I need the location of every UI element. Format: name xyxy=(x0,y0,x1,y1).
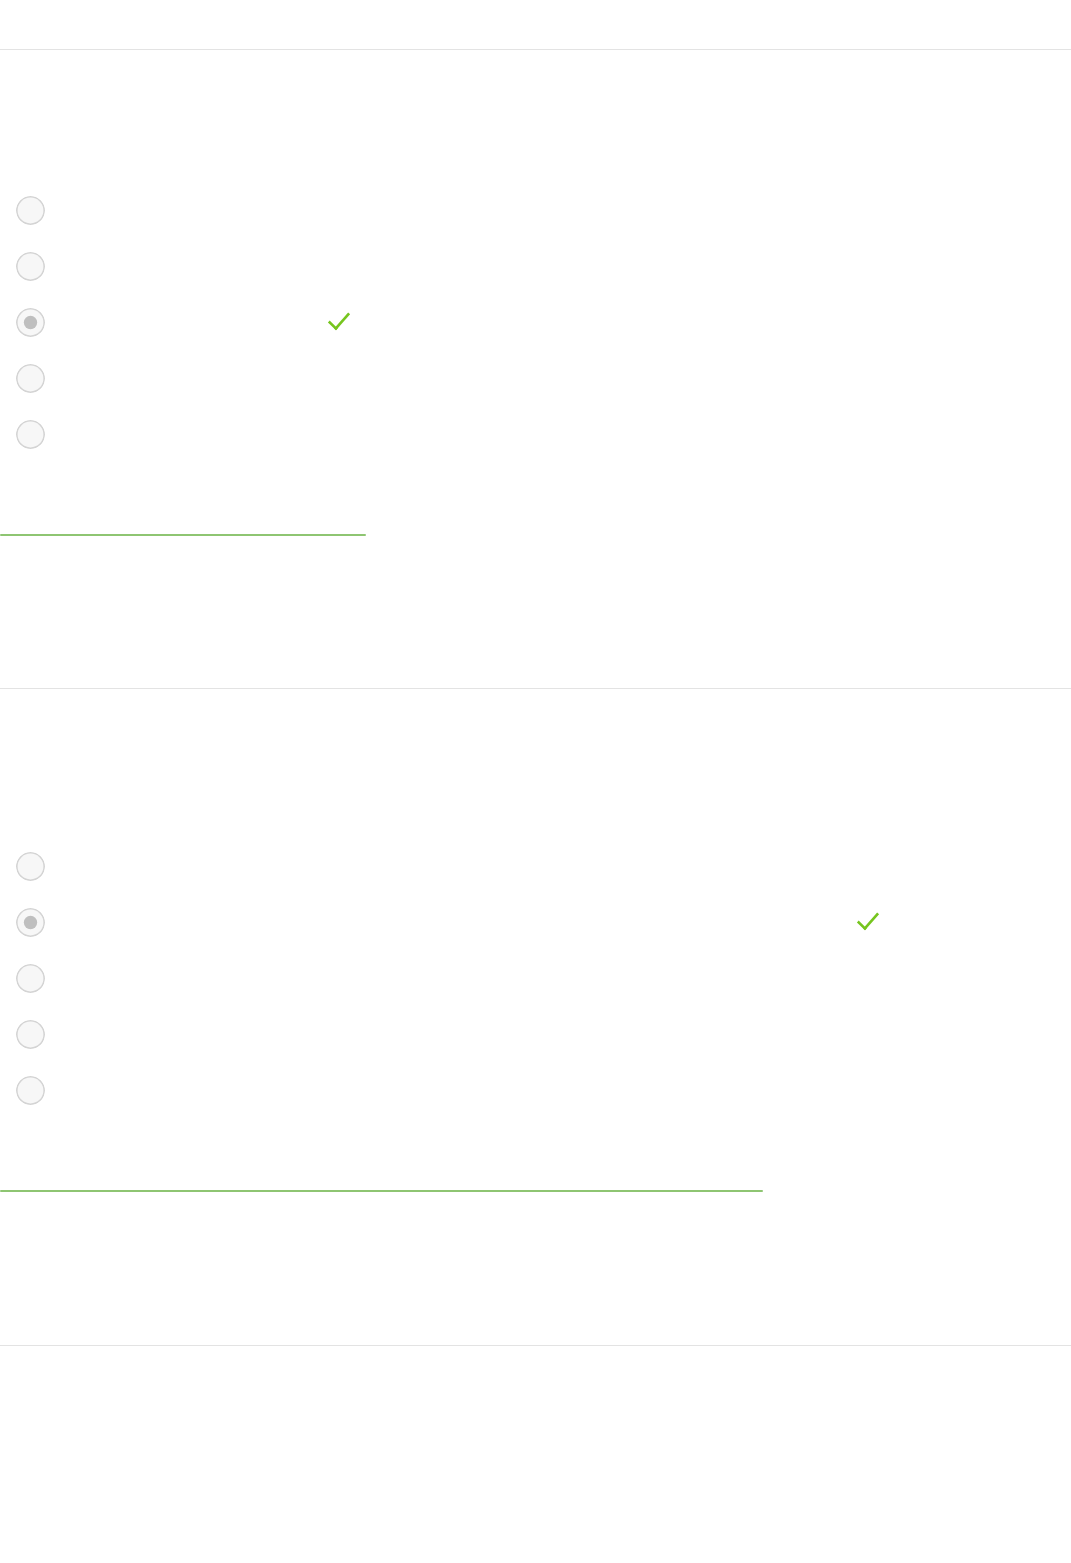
button[interactable]: Option 2 xyxy=(16,252,45,281)
button[interactable]: Option 1 xyxy=(16,852,45,881)
button[interactable]: Option 3 xyxy=(16,308,45,337)
button[interactable]: Option 4 xyxy=(16,364,45,393)
button[interactable]: Option 2 xyxy=(16,908,45,937)
other: Correct answer xyxy=(328,312,350,332)
button[interactable]: Option 5 xyxy=(16,1076,45,1105)
button[interactable]: Option 4 xyxy=(16,1020,45,1049)
button[interactable]: Option 1 xyxy=(16,196,45,225)
other: Correct answer xyxy=(857,912,879,932)
button[interactable]: Option 3 xyxy=(16,964,45,993)
button[interactable]: Option 5 xyxy=(16,420,45,449)
